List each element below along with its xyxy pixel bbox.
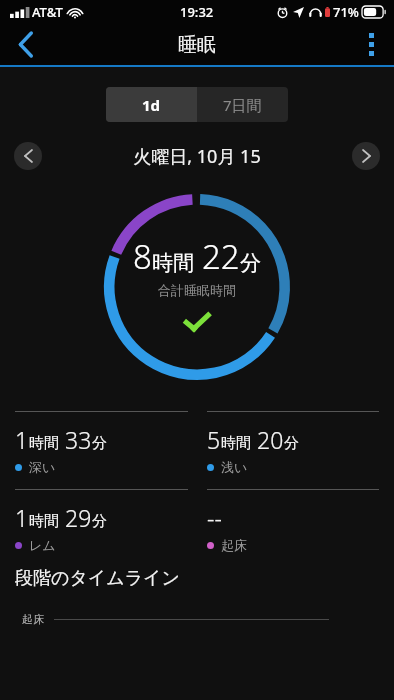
staticText: 時間 — [29, 512, 59, 531]
button[interactable]: 1d — [106, 87, 197, 122]
staticText: レム — [29, 537, 56, 553]
staticText: 浅い — [221, 459, 248, 475]
staticText: 時間 — [221, 434, 251, 453]
button[interactable]: Sleep stages ring, total 8 hours 22 minu… — [104, 194, 290, 380]
staticText: 22 — [202, 234, 240, 279]
staticText: 5 — [207, 424, 221, 455]
staticText: 起床 — [22, 612, 44, 626]
staticText: 1 — [15, 424, 29, 455]
staticText: 起床 — [221, 537, 247, 553]
staticText: 分 — [240, 250, 261, 276]
button[interactable]: Back — [0, 24, 52, 65]
staticText: 29 — [65, 502, 92, 533]
button[interactable]: More options — [348, 24, 394, 65]
staticText: 深い — [29, 459, 56, 475]
staticText: 火曜日, 10月 15 — [133, 144, 261, 169]
button[interactable]: Previous day — [14, 142, 42, 170]
staticText: AT&T — [32, 3, 63, 21]
staticText: 19:32 — [180, 3, 214, 21]
staticText: 睡眠 — [178, 33, 216, 57]
staticText: 7日間 — [223, 95, 262, 115]
staticText: 71% — [333, 3, 359, 21]
button[interactable]: 7日間 — [197, 87, 288, 122]
staticText: -- — [207, 502, 222, 533]
button[interactable]: 1 — [15, 489, 188, 553]
staticText: 合計睡眠時間 — [158, 282, 236, 298]
staticText: 20 — [257, 424, 284, 455]
staticText: 1 — [15, 502, 29, 533]
staticText: 段階のタイムライン — [15, 567, 180, 590]
button[interactable]: 5 — [207, 411, 379, 475]
staticText: 分 — [92, 434, 107, 453]
staticText: 1d — [142, 95, 161, 115]
staticText: 8 — [133, 234, 152, 279]
staticText: 時間 — [29, 434, 59, 453]
button[interactable]: 1 — [15, 411, 188, 475]
button[interactable]: -- — [207, 489, 379, 553]
button[interactable]: Next day — [352, 142, 380, 170]
staticText: 33 — [65, 424, 92, 455]
staticText: 分 — [92, 512, 107, 531]
staticText: 分 — [284, 434, 299, 453]
staticText: 時間 — [152, 250, 194, 276]
